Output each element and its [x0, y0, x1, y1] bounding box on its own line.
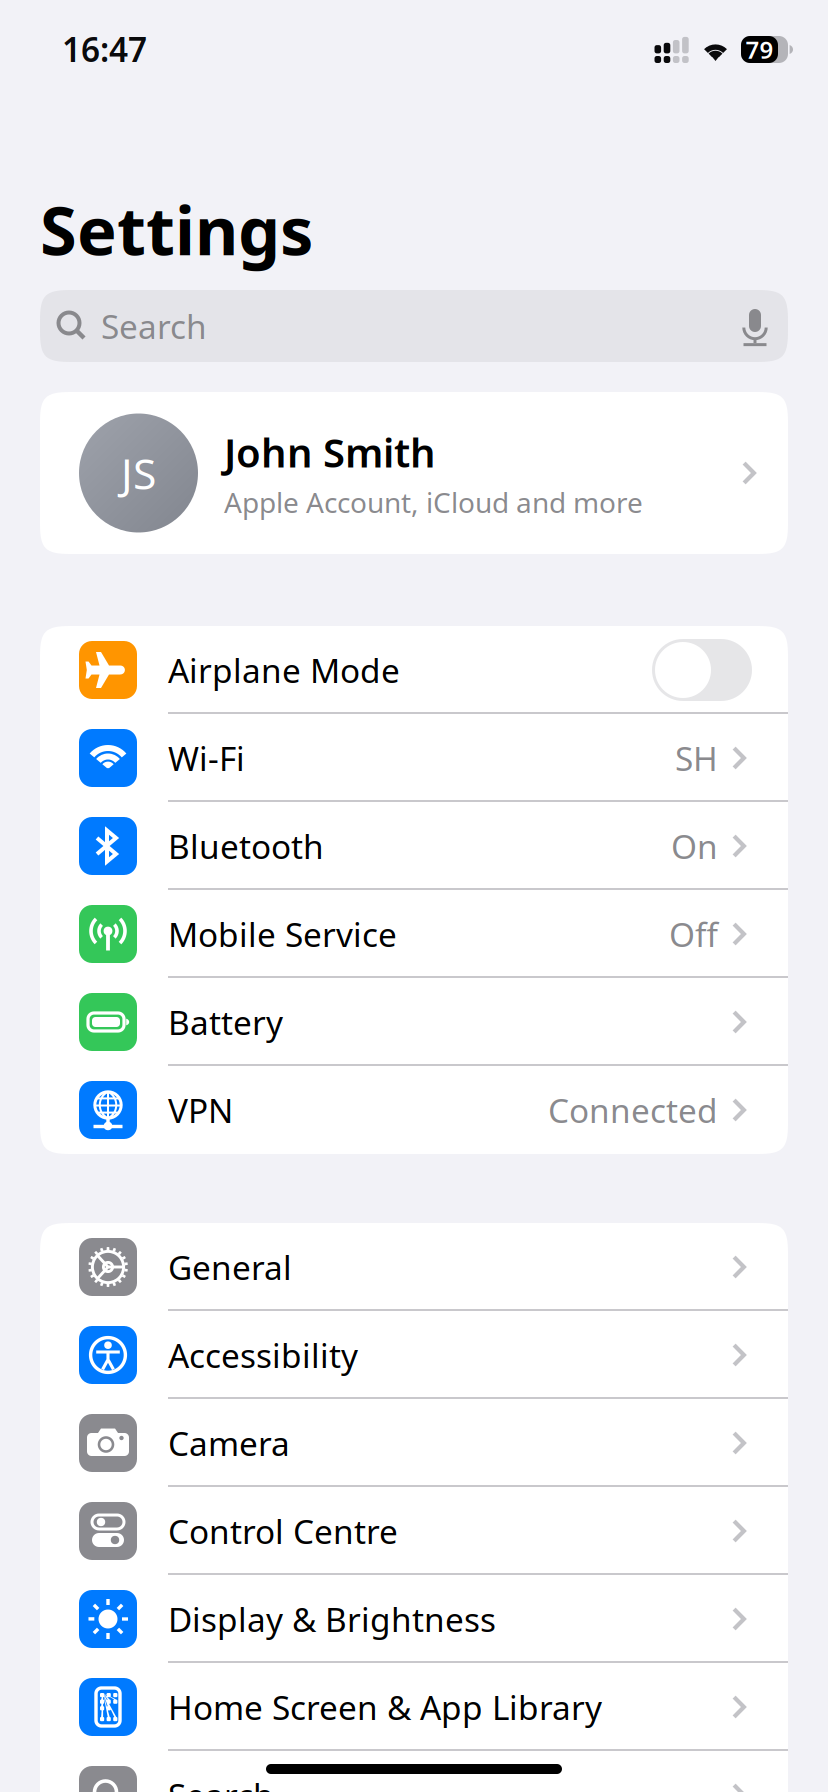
staticText: SH [675, 736, 718, 780]
staticText: Off [669, 912, 718, 956]
staticText: Airplane Mode [168, 648, 400, 692]
staticText: Connected [548, 1088, 718, 1132]
staticText: Search [101, 304, 207, 348]
button[interactable]: Bluetooth [40, 802, 788, 890]
button[interactable]: VPN [40, 1066, 788, 1154]
button[interactable]: General [40, 1223, 788, 1311]
button[interactable]: Search [40, 290, 788, 362]
button[interactable]: Display & Brightness [40, 1575, 788, 1663]
staticText: JS [121, 445, 156, 501]
staticText: Camera [168, 1421, 290, 1465]
staticText: VPN [168, 1088, 233, 1132]
button[interactable]: Mobile Service [40, 890, 788, 978]
staticText: Accessibility [168, 1333, 358, 1377]
staticText: Settings [40, 185, 313, 273]
staticText: Home Screen & App Library [168, 1685, 602, 1729]
button[interactable]: Camera [40, 1399, 788, 1487]
button[interactable]: Wi-Fi [40, 714, 788, 802]
staticText: 79 [745, 34, 773, 65]
button[interactable]: Search [40, 1751, 788, 1792]
staticText: Wi-Fi [168, 736, 245, 780]
staticText: Control Centre [168, 1509, 398, 1553]
button[interactable]: Accessibility [40, 1311, 788, 1399]
staticText: 16:47 [62, 27, 147, 71]
staticText: Mobile Service [168, 912, 397, 956]
button[interactable]: Battery [40, 978, 788, 1066]
staticText: Bluetooth [168, 824, 324, 868]
staticText: Display & Brightness [168, 1597, 496, 1641]
button[interactable]: Airplane Mode [40, 626, 788, 714]
staticText: General [168, 1245, 292, 1289]
staticText: Search [168, 1773, 274, 1792]
staticText: John Smith [224, 425, 436, 478]
staticText: Battery [168, 1000, 283, 1044]
staticText: Apple Account, iCloud and more [224, 483, 643, 521]
button[interactable]: Control Centre [40, 1487, 788, 1575]
button[interactable]: JS [40, 392, 788, 554]
button[interactable]: Home Screen & App Library [40, 1663, 788, 1751]
staticText: On [671, 824, 718, 868]
